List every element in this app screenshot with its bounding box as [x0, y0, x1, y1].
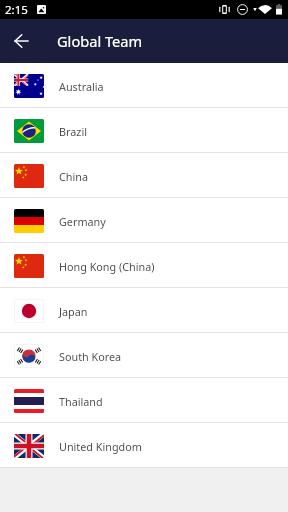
- staticText: Brazil: [59, 124, 87, 139]
- button[interactable]: Hong Kong (China): [0, 243, 288, 288]
- button[interactable]: Brazil: [0, 108, 288, 153]
- button[interactable]: Japan: [0, 288, 288, 333]
- button[interactable]: Thailand: [0, 378, 288, 423]
- staticText: Australia: [59, 79, 104, 94]
- staticText: Hong Kong (China): [59, 259, 155, 274]
- staticText: China: [59, 169, 89, 184]
- staticText: 2:15: [5, 2, 28, 18]
- staticText: Germany: [59, 214, 106, 229]
- button[interactable]: Australia: [0, 63, 288, 108]
- staticText: Global Team: [57, 31, 143, 51]
- staticText: South Korea: [59, 349, 122, 364]
- staticText: Thailand: [59, 394, 103, 409]
- button[interactable]: China: [0, 153, 288, 198]
- staticText: Japan: [59, 304, 88, 319]
- staticText: United Kingdom: [59, 439, 142, 454]
- button[interactable]: United Kingdom: [0, 423, 288, 468]
- button[interactable]: South Korea: [0, 333, 288, 378]
- button[interactable]: Germany: [0, 198, 288, 243]
- button[interactable]: Navigate up: [6, 26, 36, 56]
